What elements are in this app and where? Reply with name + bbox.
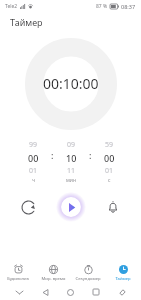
button[interactable]: Hide xyxy=(12,285,26,299)
staticText: с xyxy=(108,177,111,184)
staticText: 10 xyxy=(66,152,77,164)
button[interactable]: Start xyxy=(56,192,86,222)
staticText: 00:10:00 xyxy=(43,74,99,93)
button[interactable]: Recents xyxy=(89,285,103,299)
button[interactable]: Screenshot xyxy=(115,285,129,299)
staticText: Таймер xyxy=(10,16,43,28)
staticText: 09 xyxy=(67,140,76,150)
button[interactable]: Back xyxy=(38,285,52,299)
button[interactable]: Ringtone xyxy=(100,194,126,220)
staticText: Будильник xyxy=(7,276,29,282)
button[interactable]: Reset xyxy=(15,194,41,220)
button[interactable]: Таймер xyxy=(106,262,140,284)
staticText: 59 xyxy=(105,140,114,150)
button[interactable]: Секундомер xyxy=(71,262,105,284)
button[interactable]: Мир. время xyxy=(36,262,70,284)
staticText: 11 xyxy=(67,166,76,176)
staticText: Мир. время xyxy=(41,276,66,282)
staticText: 99 xyxy=(29,140,38,150)
staticText: : xyxy=(51,149,54,161)
staticText: 01 xyxy=(29,166,38,176)
staticText: мин xyxy=(66,177,77,184)
staticText: Таймер xyxy=(115,276,131,282)
button[interactable]: Будильник xyxy=(1,262,35,284)
button[interactable]: Home xyxy=(63,285,77,299)
staticText: 08:37 xyxy=(121,3,136,10)
staticText: Tele2 xyxy=(5,3,18,10)
staticText: Секундомер xyxy=(75,276,101,282)
staticText: 00 xyxy=(28,152,39,164)
staticText: 87 % xyxy=(96,3,108,10)
staticText: 01 xyxy=(105,166,114,176)
staticText: ч xyxy=(32,177,35,184)
staticText: : xyxy=(89,149,92,161)
staticText: 00 xyxy=(104,152,115,164)
